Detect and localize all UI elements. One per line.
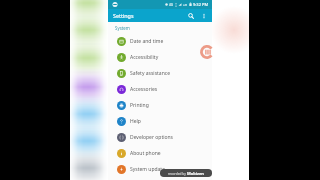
button[interactable]: About phone	[108, 145, 212, 161]
staticText: Developer options	[130, 134, 174, 141]
button[interactable]: Accessibility	[108, 49, 212, 65]
staticText: Settings	[113, 12, 134, 19]
staticText: Accessories	[130, 86, 158, 93]
button[interactable]: Safety assistance	[108, 65, 212, 81]
staticText: About phone	[130, 150, 161, 157]
button[interactable]: Search	[184, 9, 198, 22]
staticText: Safety assistance	[130, 70, 170, 77]
staticText: System	[115, 25, 130, 31]
button[interactable]: Printing	[108, 97, 212, 113]
staticText: Help	[130, 118, 141, 125]
staticText: Accessibility	[130, 54, 159, 61]
staticText: Printing	[130, 102, 149, 109]
button[interactable]: Developer options	[108, 129, 212, 145]
button[interactable]: Date and time	[108, 33, 212, 49]
button[interactable]: Accessories	[108, 81, 212, 97]
staticText: 4G	[169, 3, 174, 7]
staticText: 9:32 PM	[193, 2, 209, 7]
button[interactable]: Help	[108, 113, 212, 129]
staticText: System update	[130, 166, 165, 173]
staticText: Date and time	[130, 38, 164, 45]
staticText: +n	[183, 2, 188, 7]
staticText: recorded by	[168, 172, 187, 176]
button[interactable]: More options	[198, 9, 210, 22]
button[interactable]: System update	[108, 161, 212, 177]
staticText: Mobizen	[187, 171, 204, 176]
